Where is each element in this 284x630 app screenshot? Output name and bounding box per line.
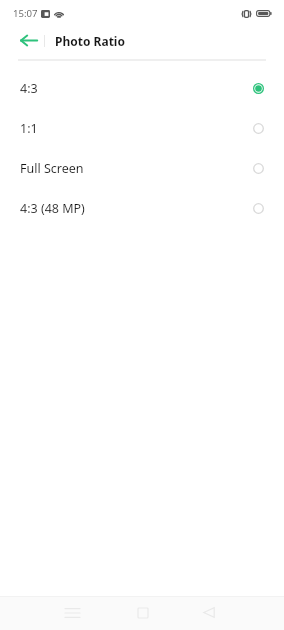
staticText: 1:1 [20, 120, 38, 137]
button[interactable]: 4:3 [0, 68, 284, 108]
button[interactable]: Back [19, 31, 38, 50]
staticText: Photo Ratio [55, 33, 125, 49]
staticText: Full Screen [20, 160, 84, 177]
button[interactable]: 4:3 (48 MP) [0, 188, 284, 228]
staticText: 15:07 [13, 7, 38, 20]
staticText: 4:3 [20, 80, 38, 97]
button[interactable]: Full Screen [0, 148, 284, 188]
button[interactable]: 1:1 [0, 108, 284, 148]
staticText: 4:3 (48 MP) [20, 200, 85, 217]
